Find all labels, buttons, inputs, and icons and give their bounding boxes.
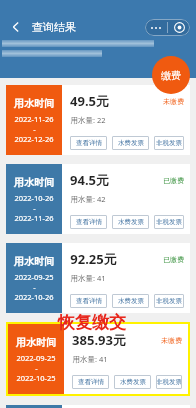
button[interactable]: 水费发票 (112, 294, 149, 308)
button[interactable]: 水费发票 (114, 375, 151, 389)
button[interactable]: 用水时间 (6, 85, 190, 155)
staticText: - (33, 203, 36, 213)
button[interactable]: 非税发票 (154, 136, 184, 150)
staticText: 2022-10-25 (16, 373, 56, 383)
staticText: 2022-11-26 (14, 213, 54, 223)
staticText: 未缴费 (161, 336, 182, 345)
button[interactable]: 查看详情 (72, 375, 109, 389)
staticText: 用水时间 (14, 255, 54, 268)
staticText: 2022-10-26 (14, 193, 54, 203)
staticText: 92.25元 (70, 250, 117, 268)
staticText: 水费发票 (118, 297, 144, 305)
button[interactable]: 水费发票 (112, 136, 149, 150)
staticText: 49.5元 (70, 92, 109, 110)
staticText: 用水量: 22 (70, 115, 106, 125)
button[interactable]: 非税发票 (154, 215, 184, 229)
staticText: 非税发票 (156, 297, 182, 305)
staticText: 385.93元 (72, 331, 126, 349)
staticText: 2022-10-26 (14, 292, 54, 302)
button[interactable]: 查看详情 (70, 215, 107, 229)
button[interactable]: Close (168, 19, 190, 36)
staticText: 非税发票 (156, 218, 182, 226)
staticText: 用水时间 (14, 176, 54, 189)
staticText: 2022-12-26 (14, 134, 54, 144)
staticText: 2022-11-26 (14, 114, 54, 124)
staticText: 用水时间 (14, 97, 54, 110)
staticText: 查看详情 (76, 218, 102, 226)
staticText: - (33, 282, 36, 292)
staticText: 2022-09-25 (16, 353, 56, 363)
staticText: 非税发票 (156, 378, 182, 386)
staticText: 用水时间 (16, 336, 56, 349)
staticText: 恢复缴交 (58, 312, 126, 333)
staticText: 查看详情 (76, 139, 102, 147)
button[interactable]: 非税发票 (156, 375, 182, 389)
staticText: 用水量: 42 (70, 194, 106, 204)
staticText: 已缴费 (163, 255, 184, 264)
staticText: 水费发票 (120, 378, 146, 386)
staticText: 用水量: 41 (70, 273, 106, 283)
staticText: 查看详情 (78, 378, 104, 386)
button[interactable]: More options (145, 19, 167, 36)
button[interactable]: 缴费 (152, 56, 190, 94)
button[interactable]: 用水时间 (6, 164, 190, 234)
staticText: 未缴费 (163, 97, 184, 106)
staticText: - (35, 363, 38, 373)
staticText: 2022-09-25 (14, 272, 54, 282)
button[interactable]: 查看详情 (70, 294, 107, 308)
button[interactable]: 用水时间 (6, 243, 190, 313)
staticText: 非税发票 (156, 139, 182, 147)
button[interactable]: 非税发票 (154, 294, 184, 308)
button[interactable]: 水费发票 (112, 215, 149, 229)
staticText: 查询结果 (32, 20, 76, 34)
staticText: 已缴费 (163, 176, 184, 185)
staticText: 水费发票 (118, 139, 144, 147)
staticText: 查看详情 (76, 297, 102, 305)
button[interactable]: Back (6, 17, 26, 37)
staticText: 水费发票 (118, 218, 144, 226)
button[interactable]: 查看详情 (70, 136, 107, 150)
staticText: 用水量: 41 (72, 354, 108, 364)
staticText: 缴费 (161, 69, 181, 82)
staticText: - (33, 124, 36, 134)
staticText: 94.5元 (70, 171, 109, 189)
button[interactable]: 用水时间 (8, 324, 188, 394)
